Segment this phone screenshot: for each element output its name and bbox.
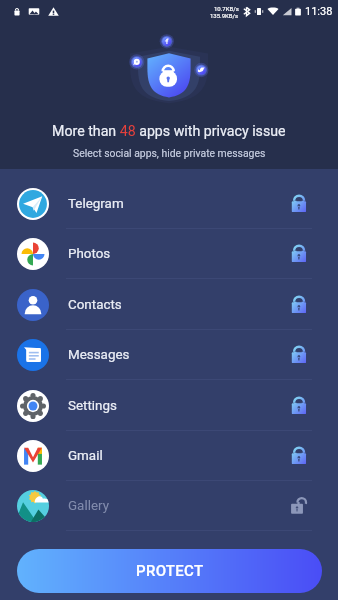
staticText: Contacts <box>68 297 122 313</box>
staticText: Settings <box>68 398 117 414</box>
staticText: Select social apps, hide private message… <box>73 147 266 159</box>
button[interactable]: Settings <box>0 380 338 431</box>
button[interactable]: Gmail <box>0 431 338 481</box>
staticText: 11:38 <box>305 5 333 18</box>
button[interactable]: PROTECT <box>17 549 322 593</box>
staticText: Telegram <box>68 196 124 212</box>
staticText: Photos <box>68 246 111 262</box>
staticText: More than 48 apps with privacy issue <box>52 123 286 140</box>
button[interactable]: Messages <box>0 330 338 380</box>
staticText: 135.9KB/s <box>210 12 239 19</box>
button[interactable]: Gallery <box>0 481 338 531</box>
staticText: 10.7KB/s <box>214 5 239 12</box>
button[interactable]: Contacts <box>0 279 338 330</box>
staticText: Gmail <box>68 448 103 464</box>
staticText: PROTECT <box>136 562 204 580</box>
staticText: Messages <box>68 347 130 363</box>
button[interactable]: Photos <box>0 229 338 279</box>
staticText: Gallery <box>68 498 110 514</box>
button[interactable]: Telegram <box>0 179 338 229</box>
